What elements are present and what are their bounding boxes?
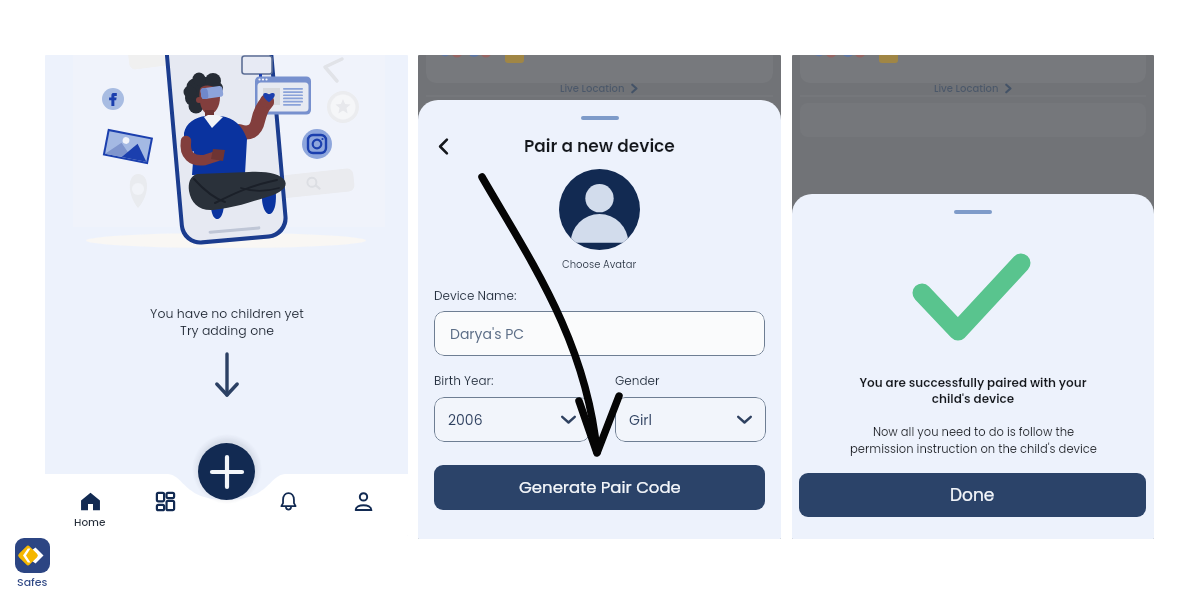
- staticText: Live Location: [560, 81, 625, 95]
- staticText: Now all you need to do is follow the per…: [850, 424, 1097, 457]
- staticText: Live Location: [934, 81, 999, 95]
- staticText: You have no children yet Try adding one: [150, 305, 304, 340]
- staticText: Birth Year:: [434, 372, 494, 389]
- staticText: Darya's PC: [450, 324, 525, 344]
- button[interactable]: Choose Avatar: [559, 169, 640, 250]
- staticText: Girl: [629, 410, 653, 430]
- button[interactable]: Done: [799, 473, 1146, 517]
- button[interactable]: Home: [66, 481, 114, 529]
- button[interactable]: Profile: [339, 481, 387, 529]
- button[interactable]: Safes app: [15, 538, 50, 573]
- button[interactable]: Back: [430, 133, 456, 159]
- staticText: Safes: [17, 574, 48, 589]
- staticText: 2006: [448, 410, 483, 430]
- staticText: Pair a new device: [524, 134, 675, 158]
- staticText: Device Name:: [434, 287, 517, 304]
- staticText: You are successfully paired with your ch…: [859, 374, 1087, 408]
- button[interactable]: Add child: [198, 443, 255, 500]
- staticText: Done: [950, 483, 995, 507]
- staticText: Generate Pair Code: [519, 476, 681, 499]
- staticText: Gender: [615, 372, 660, 389]
- button[interactable]: Darya's PC: [434, 311, 765, 356]
- button[interactable]: Dashboard: [141, 481, 189, 529]
- button[interactable]: 2006: [434, 397, 590, 442]
- staticText: Home: [74, 515, 106, 529]
- button[interactable]: Girl: [615, 397, 766, 442]
- button[interactable]: Notifications: [264, 481, 312, 529]
- button[interactable]: Generate Pair Code: [434, 465, 765, 510]
- staticText: Choose Avatar: [562, 257, 637, 271]
